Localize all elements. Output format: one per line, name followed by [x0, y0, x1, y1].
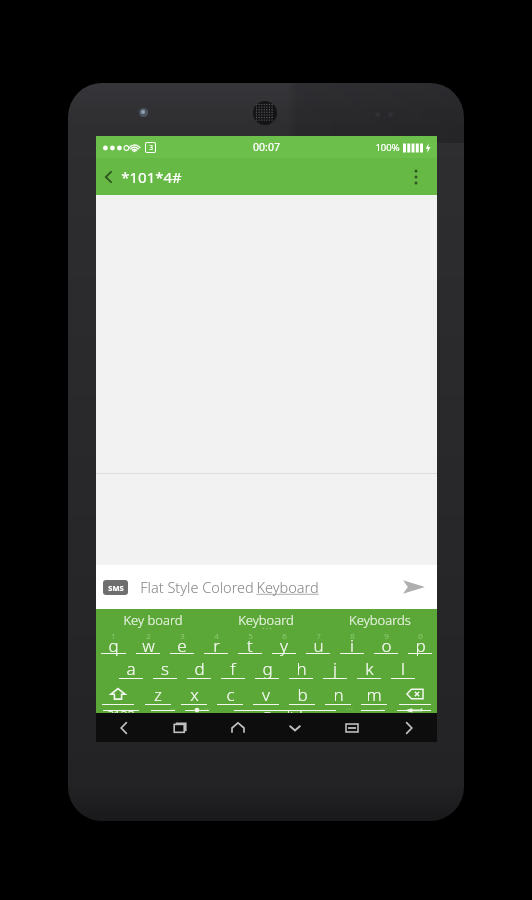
staticText: Flat Style Colored	[138, 577, 256, 597]
staticText: Keyboards	[349, 611, 411, 629]
button[interactable]: ?123	[96, 707, 146, 713]
staticText: English	[263, 707, 308, 713]
staticText: x	[190, 683, 199, 706]
button[interactable]: j	[318, 656, 352, 681]
button[interactable]: k	[352, 656, 386, 681]
button[interactable]: d	[182, 656, 216, 681]
staticText: 9	[384, 630, 389, 641]
staticText: 4	[214, 630, 219, 641]
button[interactable]: English	[214, 707, 356, 713]
staticText: 6	[282, 630, 287, 641]
staticText: j	[333, 657, 337, 680]
staticText: g	[262, 657, 273, 680]
staticText: v	[262, 683, 270, 706]
button[interactable]: Key board	[96, 609, 209, 630]
staticText: Keyboard	[238, 611, 294, 629]
button[interactable]: v	[248, 681, 284, 707]
button[interactable]: 7	[301, 630, 335, 656]
button[interactable]: a	[114, 656, 148, 681]
staticText: ,	[161, 707, 165, 713]
staticText: h	[296, 657, 307, 680]
staticText: ?123	[108, 707, 135, 713]
button[interactable]: h	[284, 656, 318, 681]
button[interactable]: m	[356, 681, 392, 707]
staticText: u	[313, 634, 324, 657]
button[interactable]: Next	[380, 713, 437, 742]
button[interactable]: x	[176, 681, 212, 707]
button[interactable]: b	[284, 681, 320, 707]
button[interactable]: c	[212, 681, 248, 707]
staticText: z	[154, 683, 162, 706]
staticText: a	[126, 657, 136, 680]
staticText: 100%	[375, 141, 400, 154]
staticText: r	[213, 634, 220, 657]
staticText: 2	[146, 630, 151, 641]
staticText: o	[381, 634, 392, 657]
staticText: 3	[149, 143, 153, 152]
staticText: 0	[418, 630, 423, 641]
button[interactable]: 2	[131, 630, 165, 656]
staticText: q	[108, 634, 119, 657]
staticText: d	[194, 657, 205, 680]
staticText: t	[247, 634, 253, 657]
staticText: f	[230, 657, 236, 680]
button[interactable]: ,	[146, 707, 180, 713]
button[interactable]: 1	[96, 630, 131, 656]
staticText: .	[371, 707, 375, 713]
button[interactable]: Home	[209, 713, 266, 742]
button[interactable]: 4	[199, 630, 233, 656]
staticText: n	[333, 683, 344, 706]
button[interactable]: Previous	[96, 713, 152, 742]
button[interactable]: 8	[335, 630, 369, 656]
button[interactable]: Recents	[152, 713, 209, 742]
button[interactable]: 5	[233, 630, 267, 656]
button[interactable]: f	[216, 656, 250, 681]
button[interactable]: 6	[267, 630, 301, 656]
staticText: Keyboard	[256, 577, 319, 597]
button[interactable]: l	[386, 656, 420, 681]
button[interactable]: 3	[165, 630, 199, 656]
button[interactable]: g	[250, 656, 284, 681]
button[interactable]: Shift	[96, 681, 140, 707]
button[interactable]: Change language	[180, 707, 214, 713]
staticText: i	[350, 634, 354, 657]
staticText: 00:07	[253, 140, 280, 154]
staticText: b	[297, 683, 308, 706]
button[interactable]: More options	[401, 162, 431, 192]
button[interactable]: SMS	[96, 565, 437, 609]
button[interactable]: Backspace	[392, 681, 437, 707]
button[interactable]: s	[148, 656, 182, 681]
staticText: *101*4#	[121, 167, 182, 187]
staticText: 8	[350, 630, 355, 641]
staticText: c	[226, 683, 235, 706]
staticText: s	[161, 657, 169, 680]
button[interactable]: .	[356, 707, 390, 713]
staticText: p	[415, 634, 426, 657]
button[interactable]: Hide keyboard	[266, 713, 323, 742]
staticText: k	[365, 657, 374, 680]
staticText: Key board	[123, 611, 183, 629]
staticText: y	[280, 634, 288, 657]
staticText: 5	[248, 630, 253, 641]
staticText: w	[142, 634, 155, 657]
staticText: l	[401, 657, 405, 680]
staticText: m	[366, 683, 382, 706]
button[interactable]: 0	[403, 630, 437, 656]
staticText: 7	[316, 630, 321, 641]
button[interactable]: z	[140, 681, 176, 707]
button[interactable]: Keyboards	[323, 609, 437, 630]
staticText: 3	[180, 630, 185, 641]
button[interactable]: 9	[369, 630, 403, 656]
button[interactable]: Enter	[390, 707, 437, 713]
button[interactable]: Menu	[323, 713, 380, 742]
button[interactable]: Send	[397, 570, 431, 604]
staticText: SMS	[108, 583, 124, 593]
button[interactable]: Back	[104, 167, 186, 187]
button[interactable]: n	[320, 681, 356, 707]
staticText: 1	[111, 630, 116, 641]
staticText: e	[177, 634, 187, 657]
button[interactable]: Keyboard	[209, 609, 323, 630]
